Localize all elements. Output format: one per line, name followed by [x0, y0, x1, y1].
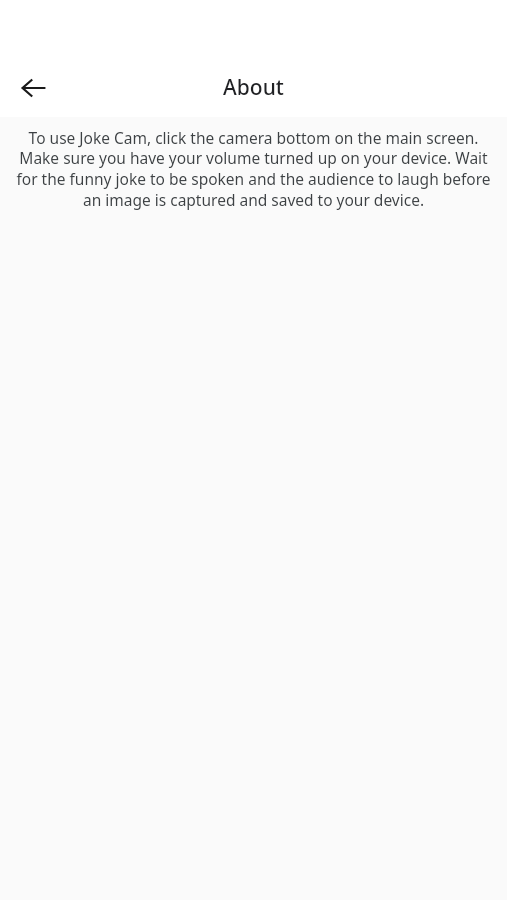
staticText: About [223, 73, 284, 102]
button[interactable]: Back [6, 60, 62, 116]
staticText: To use Joke Cam, click the camera bottom… [12, 127, 495, 211]
